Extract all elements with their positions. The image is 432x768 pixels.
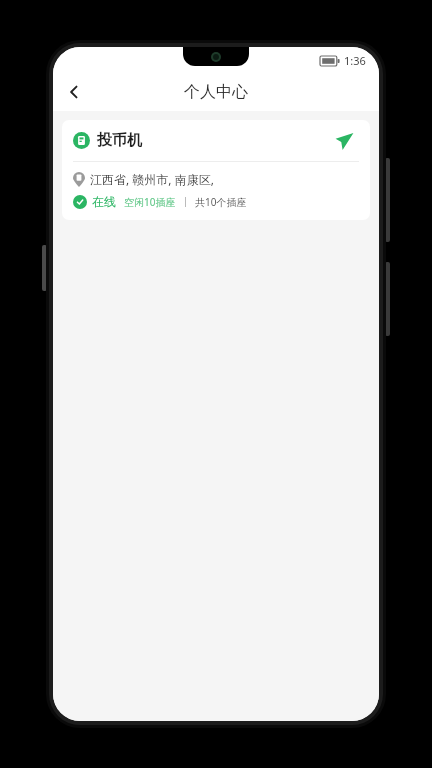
staticText: 共10个插座: [195, 195, 247, 209]
staticText: 1:36: [344, 53, 366, 68]
button[interactable]: Back: [53, 73, 95, 111]
button[interactable]: Navigate: [329, 126, 359, 156]
button[interactable]: 投币机: [62, 120, 370, 220]
staticText: 空闲10插座: [124, 195, 176, 209]
staticText: 投币机: [97, 131, 142, 150]
staticText: 江西省, 赣州市, 南康区,: [90, 171, 214, 187]
staticText: 在线: [92, 194, 116, 209]
staticText: 个人中心: [184, 82, 248, 102]
